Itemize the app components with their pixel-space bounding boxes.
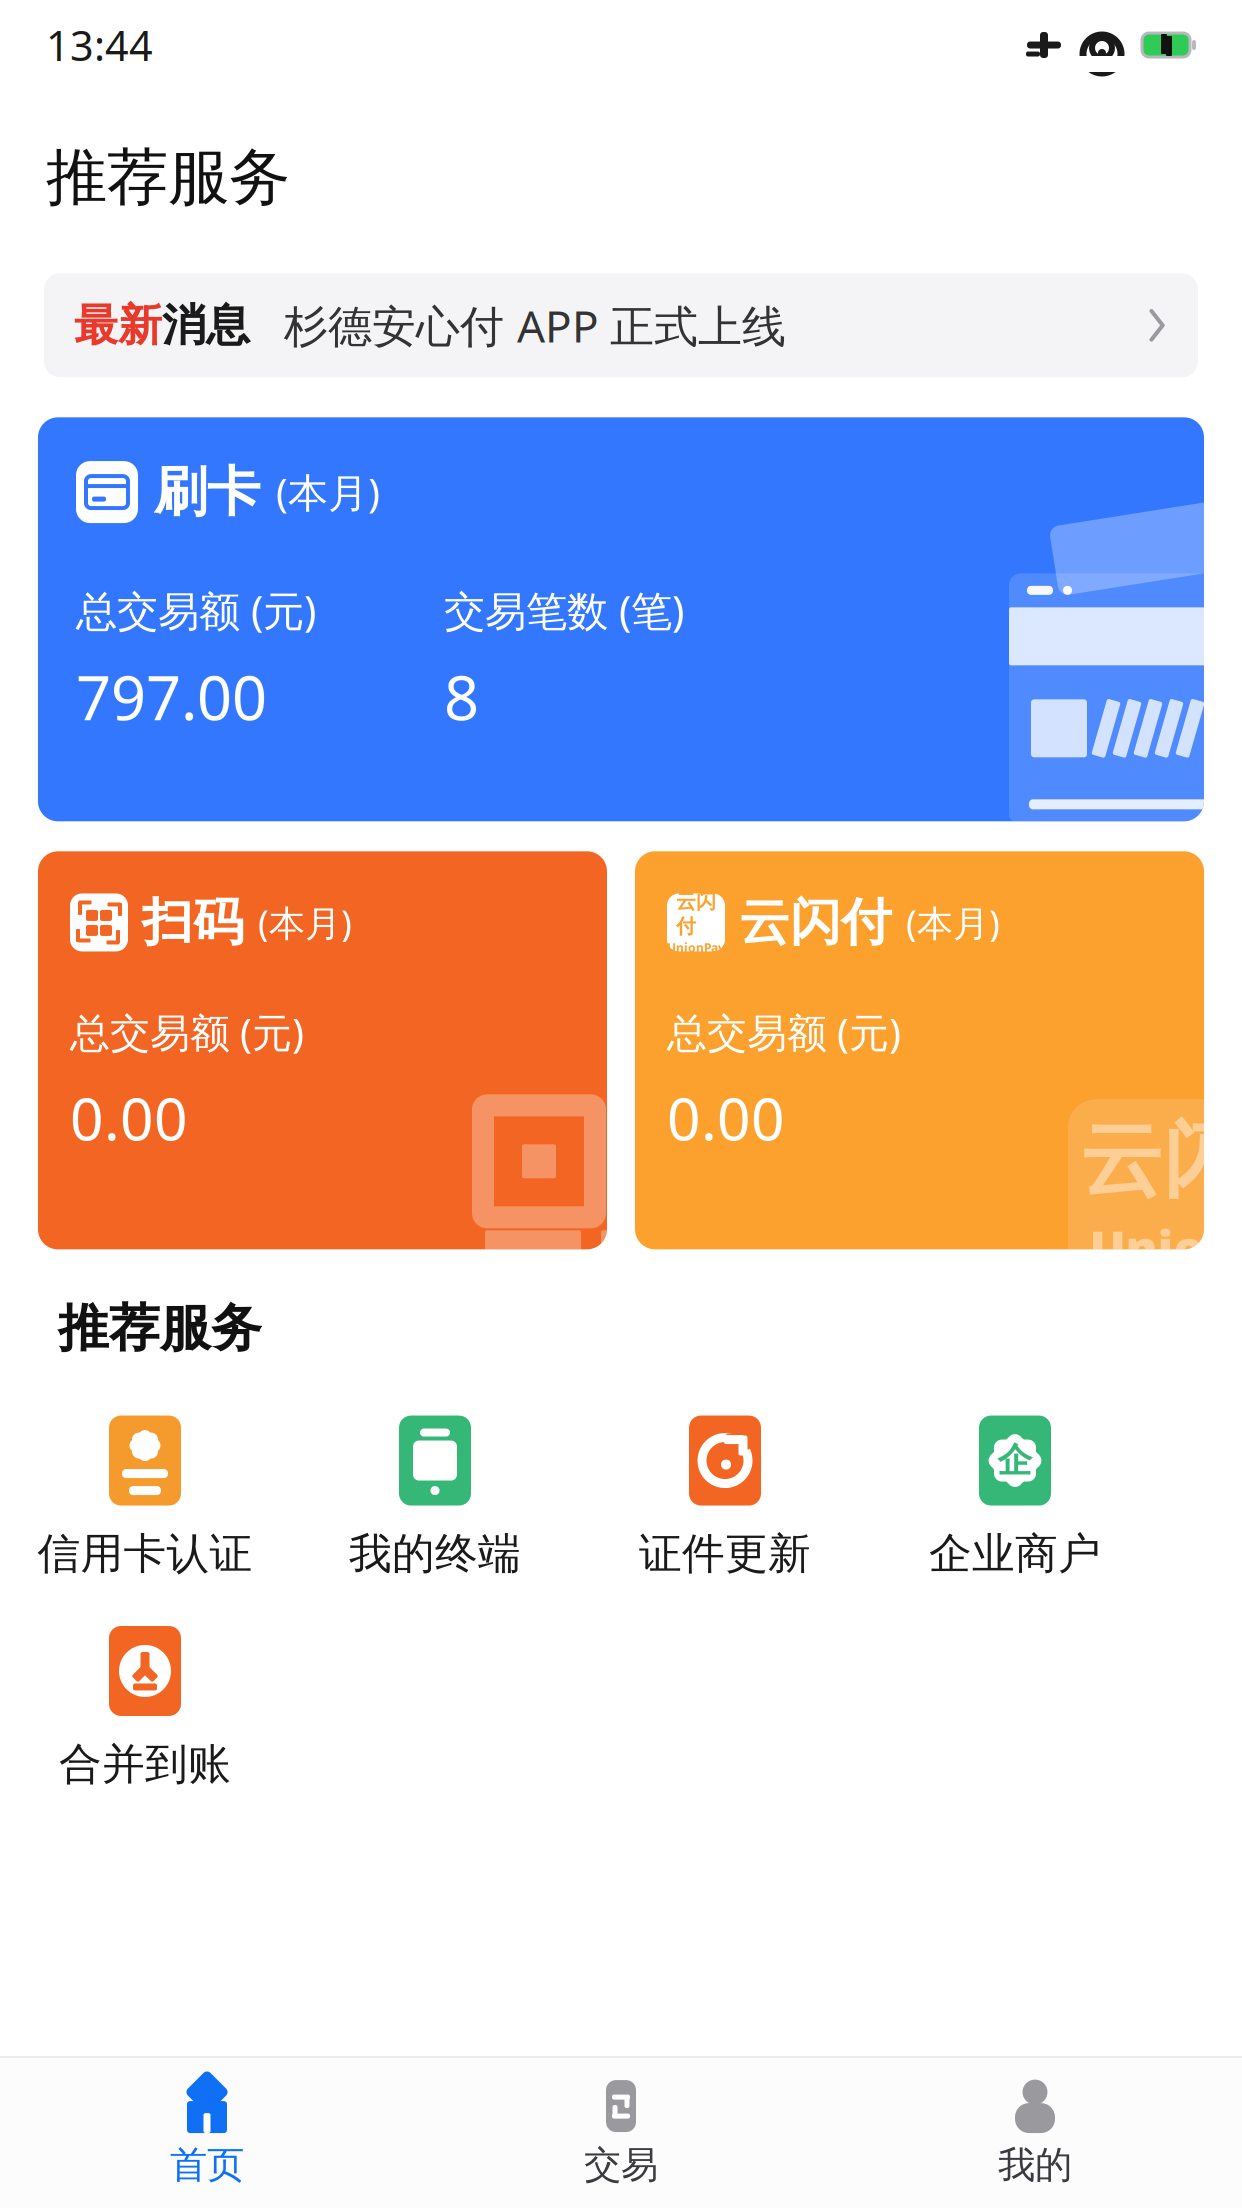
staticText: 推荐服务 — [46, 140, 290, 215]
staticText: 0.00 — [667, 1079, 785, 1157]
staticText: (本月) — [258, 898, 352, 946]
staticText: 总交易额 (元) — [70, 1006, 304, 1059]
staticText: 797.00 — [76, 656, 267, 737]
staticText: 云闪付 — [676, 889, 716, 938]
staticText: 我的终端 — [349, 1528, 521, 1580]
button[interactable]: 首页 — [0, 2058, 414, 2208]
staticText: Union — [1089, 1215, 1236, 1279]
staticText: UnionPay — [667, 939, 725, 955]
staticText: 13:44 — [46, 18, 153, 72]
staticText: 交易 — [584, 2142, 658, 2188]
button[interactable]: 企 — [870, 1416, 1160, 1580]
staticText: 扫码 — [142, 891, 244, 953]
button[interactable]: 云闪 — [635, 851, 1204, 1249]
staticText: 首页 — [170, 2142, 244, 2188]
staticText: 交易笔数 (笔) — [444, 583, 684, 638]
staticText: 证件更新 — [639, 1528, 811, 1580]
button[interactable]: 刷卡 — [38, 417, 1204, 821]
staticText: 信用卡认证 — [37, 1528, 252, 1580]
staticText: 云闪付 — [739, 891, 892, 953]
staticText: 消息 — [162, 298, 250, 352]
staticText: 企 — [997, 1439, 1032, 1482]
button[interactable]: 扫码 — [38, 851, 607, 1249]
staticText: 刷卡 — [154, 459, 260, 525]
staticText: 杉德安心付 APP 正式上线 — [284, 296, 786, 354]
staticText: (本月) — [906, 898, 1000, 946]
staticText: 0.00 — [70, 1079, 188, 1157]
staticText: 云闪 — [1080, 1110, 1242, 1211]
staticText: 总交易额 (元) — [667, 1006, 901, 1059]
staticText: (本月) — [276, 465, 380, 519]
staticText: 我的 — [998, 2142, 1072, 2188]
button[interactable]: 合并到账 — [0, 1626, 290, 1790]
button[interactable]: 最新 — [44, 273, 1198, 377]
button[interactable]: 交易 — [414, 2058, 828, 2208]
staticText: 合并到账 — [59, 1738, 231, 1790]
button[interactable]: 信用卡认证 — [0, 1416, 290, 1580]
button[interactable]: 我的终端 — [290, 1416, 580, 1580]
staticText: 推荐服务 — [58, 1297, 262, 1359]
staticText: 总交易额 (元) — [76, 583, 316, 638]
staticText: 企业商户 — [929, 1528, 1101, 1580]
button[interactable]: 证件更新 — [580, 1416, 870, 1580]
staticText: 最新 — [74, 298, 162, 352]
staticText: 8 — [444, 656, 479, 737]
button[interactable]: 我的 — [828, 2058, 1242, 2208]
